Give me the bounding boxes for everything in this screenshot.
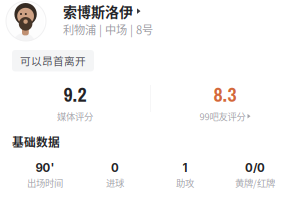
staticText: 助攻 — [176, 176, 194, 189]
staticText: 黄牌/红牌 — [235, 176, 275, 189]
staticText: 基础数据 — [12, 133, 60, 150]
button[interactable]: 索博斯洛伊 — [6, 1, 300, 41]
staticText: 90' — [35, 161, 54, 175]
staticText: 出场时间 — [27, 176, 63, 189]
staticText: 99吧友评分 — [199, 109, 245, 123]
staticText: 9.2 — [63, 81, 86, 108]
staticText: 0/0 — [245, 161, 265, 175]
staticText: 媒体评分 — [57, 109, 93, 123]
staticText: 利物浦 | 中场 | 8号 — [63, 21, 153, 37]
button[interactable]: 8.3 — [150, 81, 300, 123]
staticText: 索博斯洛伊 — [63, 1, 133, 21]
staticText: 1 — [182, 161, 187, 175]
staticText: 进球 — [106, 176, 124, 189]
staticText: 8.3 — [213, 81, 236, 108]
staticText: 可以昂首离开 — [20, 53, 86, 68]
staticText: 0 — [111, 161, 119, 175]
